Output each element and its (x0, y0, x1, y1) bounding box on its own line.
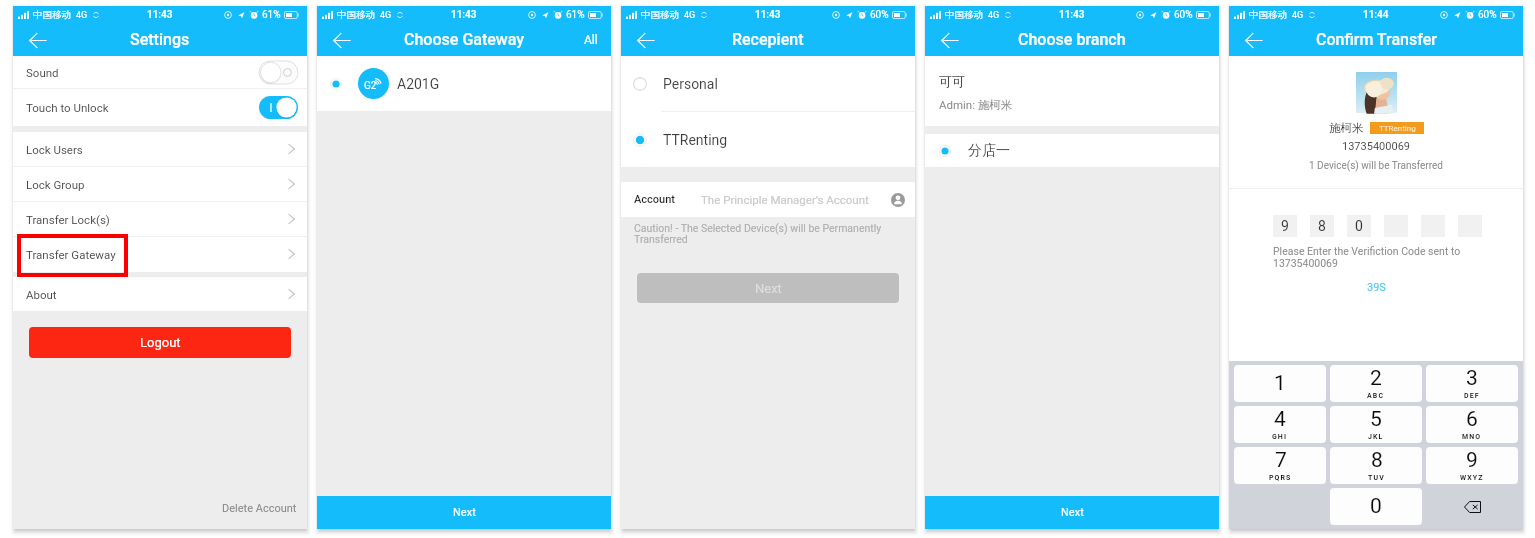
staticText: Confirm Transfer (1316, 30, 1437, 49)
staticText: 4G (380, 10, 392, 21)
staticText: Touch to Unlock (26, 101, 109, 114)
staticText: 39S (1367, 281, 1386, 294)
staticText: TTRenting (1379, 124, 1416, 133)
button[interactable]: 7 (1234, 447, 1326, 484)
button[interactable]: Back (939, 29, 961, 51)
staticText: GHI (1272, 433, 1288, 441)
staticText: DEF (1464, 392, 1480, 400)
button[interactable]: Transfer Lock(s) (13, 202, 307, 236)
button[interactable]: 2 (1330, 365, 1422, 402)
staticText: Recepient (732, 30, 804, 49)
staticText: The Principle Manager's Account (701, 193, 869, 206)
staticText: 61% (262, 9, 281, 21)
button[interactable]: 9 (1426, 447, 1518, 484)
button[interactable]: Back (1243, 29, 1265, 51)
button[interactable]: 1 (1234, 365, 1326, 402)
staticText: 2 (1370, 366, 1382, 391)
staticText: 60% (1174, 9, 1193, 21)
button[interactable]: Next (925, 496, 1219, 529)
staticText: 60% (1478, 9, 1497, 21)
staticText: Account (634, 193, 676, 206)
button[interactable]: 3 (1426, 365, 1518, 402)
button[interactable]: 39S (1363, 277, 1390, 298)
staticText: 可可 (939, 73, 965, 89)
staticText: 60% (870, 9, 889, 21)
staticText: 中国移动 (1249, 9, 1287, 21)
staticText: Please Enter the Verifiction Code sent t… (1273, 245, 1461, 270)
button[interactable]: All (571, 26, 611, 54)
staticText: 3 (1466, 366, 1478, 391)
staticText: Next (1061, 506, 1084, 519)
staticText: 8 (1371, 448, 1383, 473)
staticText: TUV (1368, 474, 1385, 482)
staticText: About (26, 288, 57, 301)
button[interactable]: Logout (29, 327, 291, 358)
staticText: Admin: 施柯米 (939, 98, 1013, 112)
button[interactable]: 0 (1347, 215, 1371, 237)
button[interactable]: 8 (1310, 215, 1334, 237)
staticText: 分店一 (968, 142, 1010, 160)
staticText: Sound (26, 66, 59, 79)
staticText: 施柯米 (1329, 121, 1364, 135)
staticText: 11:43 (147, 9, 173, 21)
staticText: 4G (76, 10, 88, 21)
button[interactable]: Personal (621, 56, 915, 111)
staticText: ABC (1367, 392, 1385, 400)
staticText: Lock Group (26, 178, 85, 191)
staticText: MNO (1462, 433, 1482, 441)
staticText: TTRenting (663, 132, 728, 148)
staticText: 中国移动 (641, 9, 679, 21)
button[interactable]: Delete Account (216, 496, 307, 529)
button[interactable]: Lock Users (13, 132, 307, 166)
button[interactable]: Transfer Gateway (13, 237, 307, 271)
staticText: 4G (1292, 10, 1304, 21)
button[interactable]: Next (317, 496, 611, 529)
button[interactable]: Back (635, 29, 657, 51)
button[interactable]: Lock Group (13, 167, 307, 201)
button[interactable]: 6 (1426, 406, 1518, 443)
staticText: 11:43 (755, 9, 781, 21)
staticText: Delete Account (222, 502, 297, 515)
staticText: 0 (1355, 218, 1363, 234)
staticText: G2 (364, 80, 377, 92)
button[interactable]: Delete (1426, 488, 1518, 525)
staticText: 1 Device(s) will be Transferred (1309, 160, 1443, 172)
staticText: 5 (1370, 407, 1382, 432)
staticText: JKL (1368, 433, 1384, 441)
staticText: 4G (684, 10, 696, 21)
staticText: PQRS (1269, 474, 1292, 482)
staticText: Logout (140, 335, 181, 350)
staticText: Transfer Lock(s) (26, 213, 110, 226)
staticText: 中国移动 (33, 9, 71, 21)
staticText: 6 (1466, 407, 1478, 432)
staticText: Personal (663, 76, 718, 92)
button[interactable]: 9 (1273, 215, 1297, 237)
button[interactable]: G2 (317, 56, 611, 111)
staticText: 9 (1466, 448, 1478, 473)
staticText: 4G (988, 10, 1000, 21)
staticText: Caution! - The Selected Device(s) will b… (634, 222, 882, 246)
button[interactable]: Back (331, 29, 353, 51)
button[interactable]: Touch to Unlock (13, 89, 307, 126)
button[interactable]: About (13, 277, 307, 311)
button[interactable]: Back (27, 29, 49, 51)
button[interactable]: Sound (13, 56, 307, 88)
button[interactable]: 5 (1330, 406, 1422, 443)
staticText: 1 (1274, 371, 1286, 396)
staticText: 7 (1275, 448, 1287, 473)
staticText: 11:44 (1363, 9, 1389, 21)
staticText: Lock Users (26, 143, 83, 156)
staticText: 8 (1318, 218, 1326, 234)
button[interactable]: 分店一 (925, 134, 1219, 167)
button[interactable]: 0 (1330, 488, 1422, 525)
button[interactable]: 4 (1234, 406, 1326, 443)
staticText: WXYZ (1460, 474, 1484, 482)
button[interactable]: Next (637, 273, 899, 303)
staticText: Choose branch (1018, 30, 1126, 49)
button[interactable]: TTRenting (621, 112, 915, 167)
button[interactable]: 8 (1330, 447, 1422, 484)
